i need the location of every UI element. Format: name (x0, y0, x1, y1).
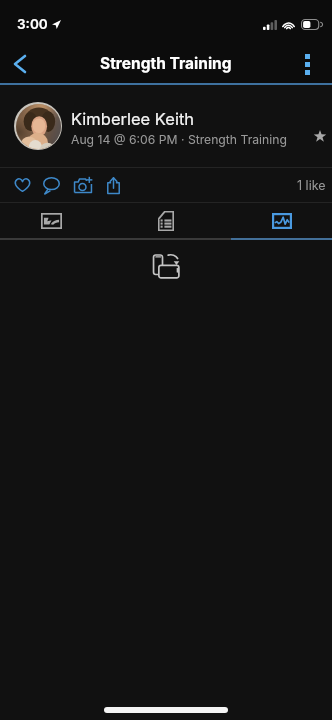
button[interactable]: Notes (110, 203, 221, 238)
button[interactable]: Add photo (67, 170, 98, 200)
staticText: Aug 14 @ 6:06 PM · Strength Training (71, 132, 287, 147)
staticText: Kimberlee Keith (71, 109, 195, 129)
button[interactable]: Comment (36, 170, 67, 200)
button[interactable]: Back (0, 44, 40, 83)
button[interactable]: Photos (0, 203, 110, 238)
button[interactable]: More options (287, 44, 332, 83)
button[interactable]: Profile photo (14, 102, 62, 150)
button[interactable]: Charts (221, 203, 332, 238)
staticText: Strength Training (100, 54, 232, 73)
staticText: 3:00 (17, 16, 48, 32)
button[interactable]: Share (98, 170, 128, 200)
staticText: 1 like (297, 178, 326, 193)
button[interactable]: Like (8, 170, 36, 200)
button[interactable]: Favorite (306, 122, 332, 150)
